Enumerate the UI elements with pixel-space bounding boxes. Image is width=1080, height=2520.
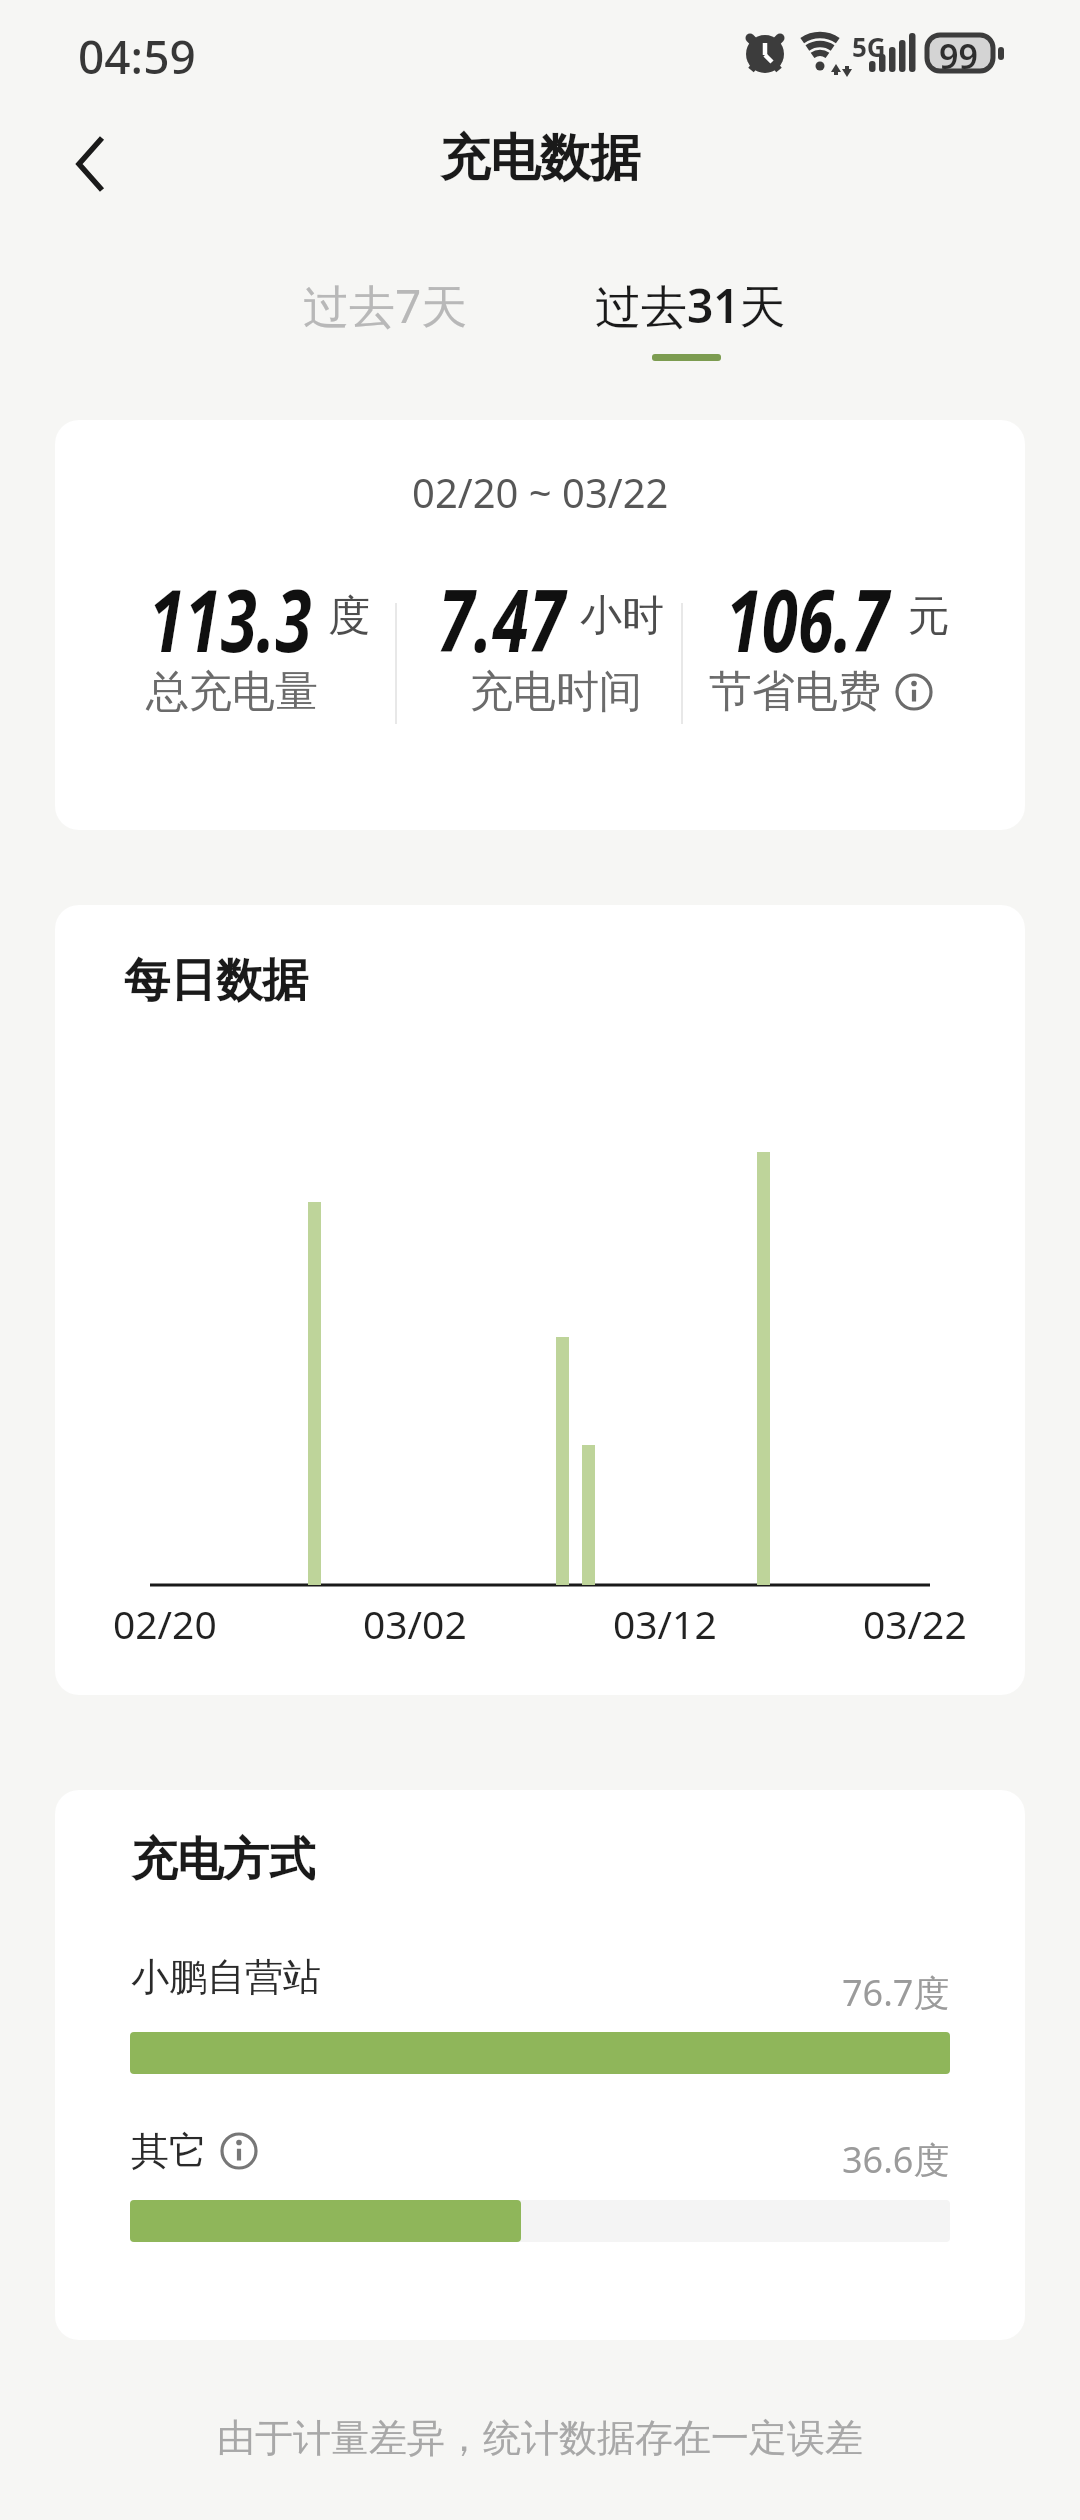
staticText: 02/20 <box>113 1597 217 1650</box>
staticText: 充电方式 <box>131 1831 315 1889</box>
staticText: 节省电费 <box>709 665 881 719</box>
staticText: 其它 <box>131 2127 207 2175</box>
button[interactable] <box>50 125 130 205</box>
staticText: 每日数据 <box>124 952 308 1010</box>
staticText: 113.3 <box>149 560 312 677</box>
staticText: 99 <box>939 33 978 79</box>
staticText: 04:59 <box>78 25 196 88</box>
staticText: 小鹏自营站 <box>131 1953 321 2001</box>
staticText: 度 <box>328 590 370 643</box>
staticText: 充电时间 <box>470 665 642 719</box>
staticText: 36.6度 <box>842 2135 950 2184</box>
staticText: 5G <box>852 29 886 64</box>
button[interactable]: 其它 <box>131 2127 258 2175</box>
button[interactable] <box>895 673 933 711</box>
staticText: 由于计量差异，统计数据存在一定误差 <box>217 2414 863 2462</box>
button[interactable]: 过去7天 <box>265 255 505 355</box>
staticText: 过去31天 <box>595 274 786 337</box>
staticText: 小时 <box>580 590 664 643</box>
staticText: 03/22 <box>863 1597 967 1650</box>
staticText: 02/20 ~ 03/22 <box>412 465 669 519</box>
staticText: 充电数据 <box>440 127 640 190</box>
staticText: 03/12 <box>613 1597 717 1650</box>
staticText: 03/02 <box>363 1597 467 1650</box>
staticText: 76.7度 <box>842 1968 950 2017</box>
staticText: 过去7天 <box>303 274 468 337</box>
button[interactable]: 过去31天 <box>560 255 820 355</box>
staticText: 7.47 <box>438 560 565 677</box>
staticText: 总充电量 <box>146 665 318 719</box>
staticText: 元 <box>908 590 950 643</box>
staticText: 106.7 <box>726 560 889 677</box>
